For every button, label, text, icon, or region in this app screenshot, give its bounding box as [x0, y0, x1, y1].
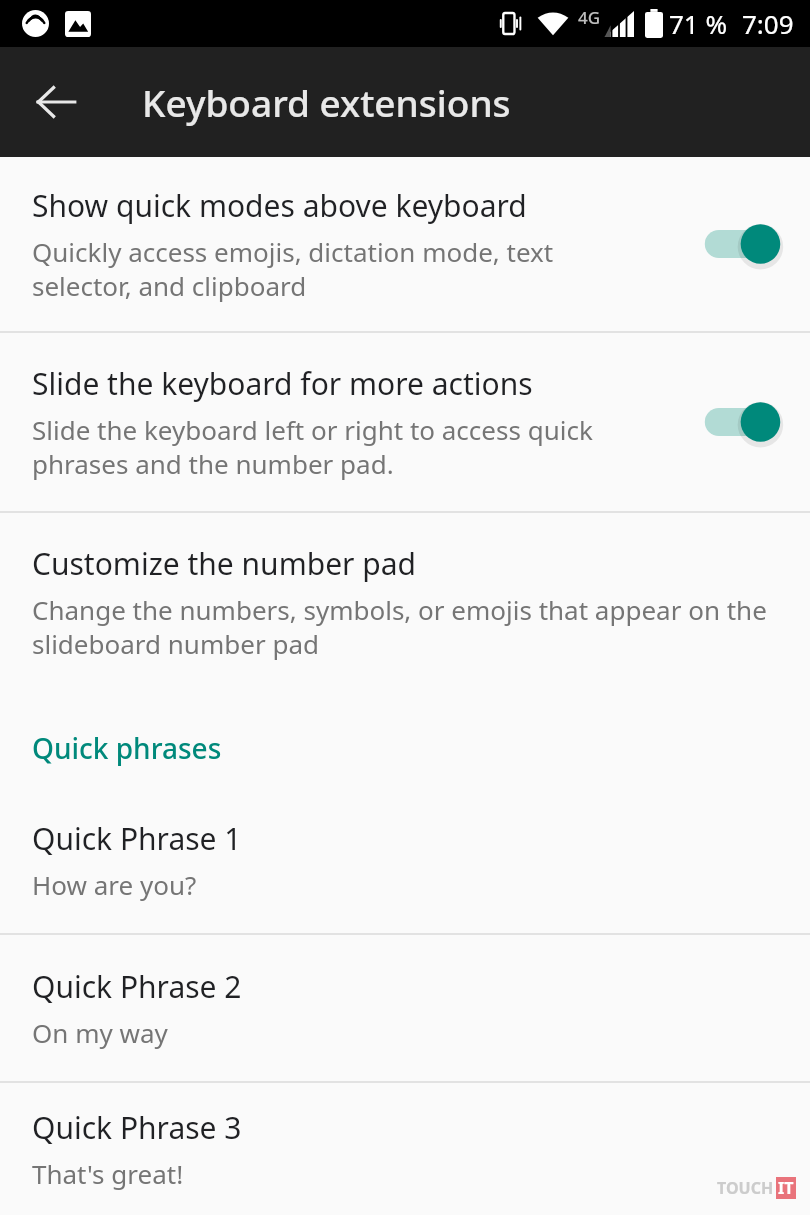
button[interactable]: Toggle setting	[696, 392, 784, 452]
staticText: Quick phrases	[32, 729, 222, 767]
staticText: Quick Phrase 2	[32, 966, 242, 1007]
staticText: Keyboard extensions	[142, 77, 511, 127]
staticText: 4G	[578, 6, 601, 29]
staticText: Quick Phrase 1	[32, 818, 242, 859]
staticText: Customize the number pad	[32, 543, 416, 584]
button[interactable]: Back	[22, 68, 90, 136]
staticText: 7:09	[742, 6, 794, 41]
staticText: How are you?	[32, 867, 197, 902]
button[interactable]: Customize the number pad	[0, 513, 810, 691]
button[interactable]: Quick Phrase 3	[0, 1083, 810, 1215]
staticText: Quickly access emojis, dictation mode, t…	[32, 234, 554, 303]
staticText: Slide the keyboard left or right to acce…	[32, 412, 593, 481]
button[interactable]: Quick Phrase 1	[0, 787, 810, 933]
button[interactable]: Slide the keyboard for more actions	[0, 333, 810, 511]
button[interactable]: Toggle setting	[696, 214, 784, 274]
staticText: Change the numbers, symbols, or emojis t…	[32, 592, 767, 661]
button[interactable]: Quick Phrase 2	[0, 935, 810, 1081]
staticText: Quick Phrase 3	[32, 1107, 242, 1148]
staticText: Slide the keyboard for more actions	[32, 363, 533, 404]
staticText: On my way	[32, 1015, 168, 1050]
button[interactable]: Show quick modes above keyboard	[0, 157, 810, 331]
staticText: IT	[778, 1177, 794, 1199]
staticText: That's great!	[32, 1156, 184, 1191]
staticText: 71 %	[669, 6, 728, 41]
staticText: Show quick modes above keyboard	[32, 185, 527, 226]
staticText: TOUCH	[717, 1177, 774, 1199]
